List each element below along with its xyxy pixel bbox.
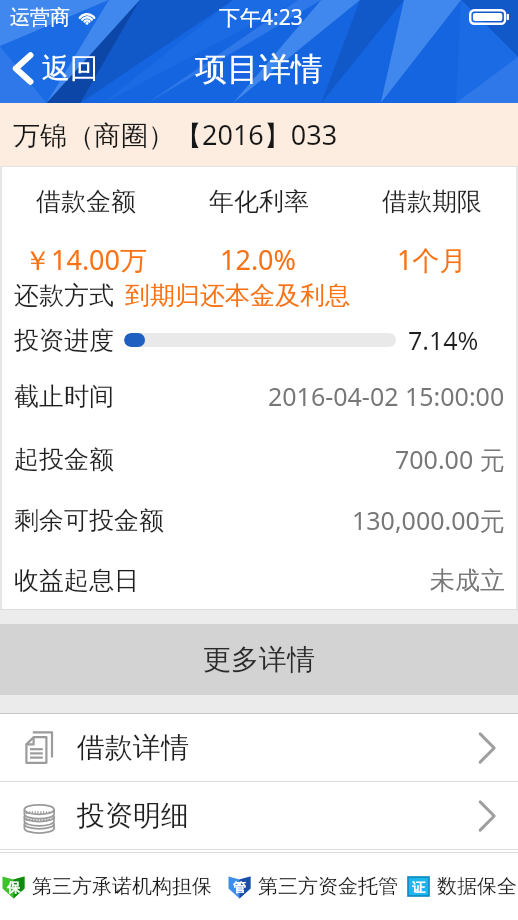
staticText: 管 bbox=[233, 879, 246, 895]
staticText: 起投金额 bbox=[14, 444, 114, 475]
staticText: 7.14% bbox=[408, 323, 479, 357]
staticText: 借款金额 bbox=[36, 186, 136, 217]
staticText: ￥14.00万 bbox=[24, 241, 148, 278]
staticText: 12.0% bbox=[220, 241, 297, 278]
staticText: 收益起息日 bbox=[14, 565, 139, 596]
staticText: 返回 bbox=[42, 51, 98, 86]
staticText: 下午4:23 bbox=[219, 3, 303, 32]
staticText: 借款详情 bbox=[77, 730, 189, 765]
staticText: 投资进度 bbox=[14, 325, 114, 356]
staticText: 数据保全 bbox=[437, 874, 517, 899]
button[interactable]: 投资明细 bbox=[0, 782, 518, 849]
staticText: 到期归还本金及利息 bbox=[125, 280, 350, 311]
staticText: 更多详情 bbox=[203, 642, 315, 677]
staticText: 投资明细 bbox=[77, 798, 189, 833]
staticText: 保 bbox=[7, 879, 20, 895]
staticText: 700.00 元 bbox=[395, 442, 505, 476]
staticText: 2016-04-02 15:00:00 bbox=[268, 379, 505, 413]
staticText: 第三方承诺机构担保 bbox=[32, 874, 212, 899]
staticText: 剩余可投金额 bbox=[14, 505, 164, 536]
staticText: 截止时间 bbox=[14, 381, 114, 412]
button[interactable]: 返回 bbox=[0, 43, 112, 94]
staticText: 万锦（商圈）【2016】033 bbox=[13, 116, 338, 153]
staticText: 运营商 bbox=[10, 5, 70, 30]
staticText: 项目详情 bbox=[195, 49, 323, 89]
staticText: 130,000.00元 bbox=[352, 503, 505, 537]
staticText: 未成立 bbox=[430, 565, 505, 596]
staticText: 还款方式 bbox=[14, 280, 114, 311]
staticText: 年化利率 bbox=[209, 186, 309, 217]
staticText: 证 bbox=[412, 879, 425, 895]
staticText: 第三方资金托管 bbox=[258, 874, 398, 899]
button[interactable]: 借款详情 bbox=[0, 714, 518, 781]
staticText: 借款期限 bbox=[382, 186, 482, 217]
staticText: 1个月 bbox=[397, 241, 467, 278]
